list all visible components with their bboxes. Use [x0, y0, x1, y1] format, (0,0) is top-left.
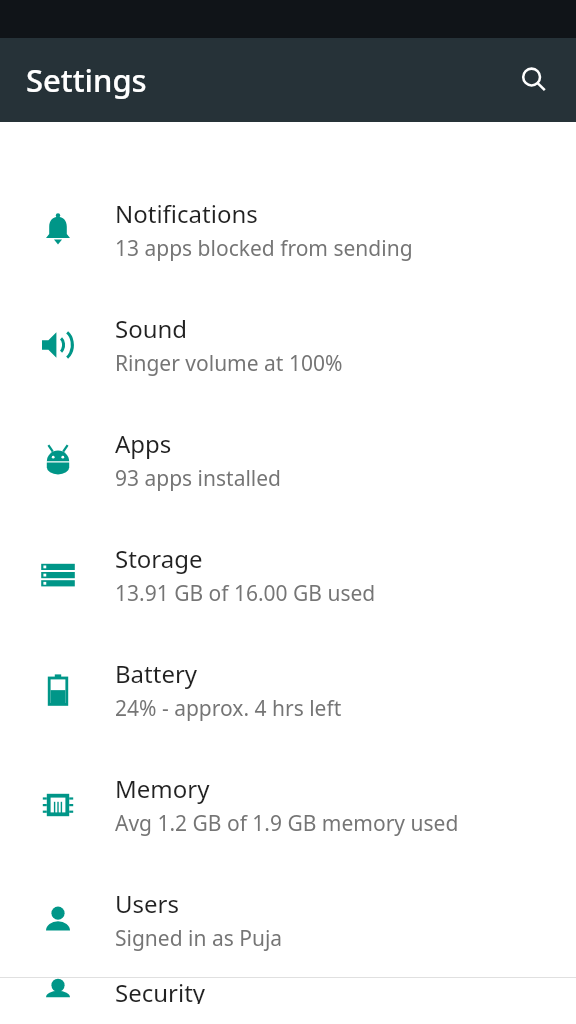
button[interactable]: Memory	[0, 747, 576, 862]
button[interactable]: Notifications	[0, 172, 576, 287]
staticText: 13 apps blocked from sending	[115, 234, 413, 263]
staticText: Settings	[26, 59, 147, 101]
staticText: Apps	[115, 427, 172, 460]
staticText: Security	[115, 978, 206, 1004]
staticText: 93 apps installed	[115, 464, 282, 493]
staticText: Ringer volume at 100%	[115, 349, 343, 378]
button[interactable]: Storage	[0, 517, 576, 632]
staticText: Notifications	[115, 197, 258, 230]
staticText: Storage	[115, 542, 203, 575]
button[interactable]: Search	[510, 56, 558, 104]
staticText: Sound	[115, 312, 188, 345]
staticText: Battery	[115, 657, 198, 690]
button[interactable]: Security	[0, 978, 576, 1006]
button[interactable]: Apps	[0, 402, 576, 517]
button[interactable]: Users	[0, 862, 576, 977]
staticText: 13.91 GB of 16.00 GB used	[115, 579, 376, 608]
button[interactable]: Battery	[0, 632, 576, 747]
staticText: Avg 1.2 GB of 1.9 GB memory used	[115, 809, 459, 838]
button[interactable]: Sound	[0, 287, 576, 402]
staticText: Signed in as Puja	[115, 924, 283, 953]
staticText: Memory	[115, 772, 210, 805]
staticText: 24% - approx. 4 hrs left	[115, 694, 342, 723]
staticText: Users	[115, 887, 179, 920]
